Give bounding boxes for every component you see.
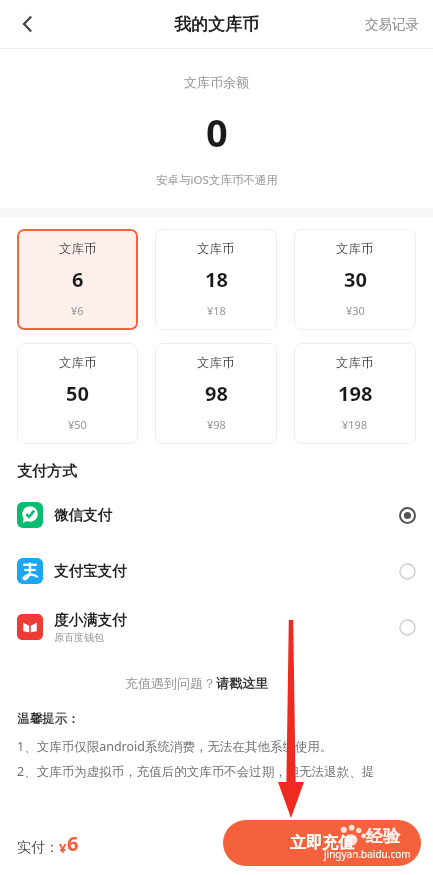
button[interactable]: 文库币 — [17, 343, 138, 444]
button[interactable]: 微信支付 — [17, 487, 416, 543]
staticText: 2、文库币为虚拟币，充值后的文库币不会过期，但无法退款、提 — [17, 763, 375, 780]
staticText: 交易记录 — [365, 16, 419, 33]
staticText: 文库币 — [336, 241, 374, 257]
button[interactable]: 文库币 — [294, 343, 416, 444]
staticText: 充值遇到问题？请戳这里 — [125, 675, 268, 691]
staticText: 50 — [66, 380, 89, 407]
staticText: 98 — [205, 380, 228, 407]
staticText: 文库币 — [197, 355, 235, 371]
staticText: 微信支付 — [54, 506, 112, 524]
button[interactable]: 文库币 — [155, 343, 277, 444]
staticText: ¥98 — [207, 417, 226, 432]
button[interactable]: 支付宝支付 — [17, 543, 416, 599]
staticText: 文库币 — [59, 355, 97, 371]
staticText: 198 — [338, 380, 373, 407]
staticText: 温馨提示： — [17, 711, 80, 727]
staticText: 我的文库币 — [174, 14, 259, 35]
staticText: 0 — [206, 106, 228, 158]
staticText: 实付： — [17, 839, 59, 857]
staticText: 度小满支付 — [54, 611, 127, 629]
staticText: 经验 — [366, 826, 400, 847]
button[interactable]: 立即充值 — [223, 820, 421, 866]
staticText: 文库币 — [59, 241, 97, 257]
button[interactable]: 文库币 — [294, 229, 416, 330]
staticText: 6 — [72, 266, 84, 293]
staticText: 18 — [205, 266, 228, 293]
staticText: 6 — [67, 830, 79, 857]
staticText: 1、文库币仅限android系统消费，无法在其他系统使用。 — [17, 738, 333, 755]
staticText: ¥30 — [346, 303, 365, 318]
staticText: ¥198 — [342, 417, 368, 432]
staticText: jingyan.baidu.com — [324, 847, 411, 861]
staticText: 原百度钱包 — [54, 631, 104, 644]
staticText: 支付宝支付 — [54, 562, 127, 580]
staticText: 支付方式 — [17, 462, 77, 481]
button[interactable]: 交易记录 — [351, 6, 433, 43]
staticText: 立即充值 — [290, 833, 354, 853]
button[interactable]: Back — [8, 4, 48, 44]
staticText: 文库币余额 — [184, 74, 249, 90]
staticText: ¥18 — [207, 303, 226, 318]
staticText: 30 — [344, 266, 367, 293]
button[interactable]: 文库币 — [17, 229, 138, 330]
staticText: 文库币 — [197, 241, 235, 257]
staticText: 文库币 — [336, 355, 374, 371]
button[interactable]: 文库币 — [155, 229, 277, 330]
staticText: ¥50 — [68, 417, 87, 432]
button[interactable]: 度小满支付 — [17, 599, 416, 655]
staticText: ¥6 — [71, 303, 84, 318]
staticText: ¥ — [59, 839, 67, 857]
staticText: 安卓与iOS文库币不通用 — [156, 172, 278, 188]
button[interactable]: 充值遇到问题？请戳这里 — [119, 669, 274, 697]
